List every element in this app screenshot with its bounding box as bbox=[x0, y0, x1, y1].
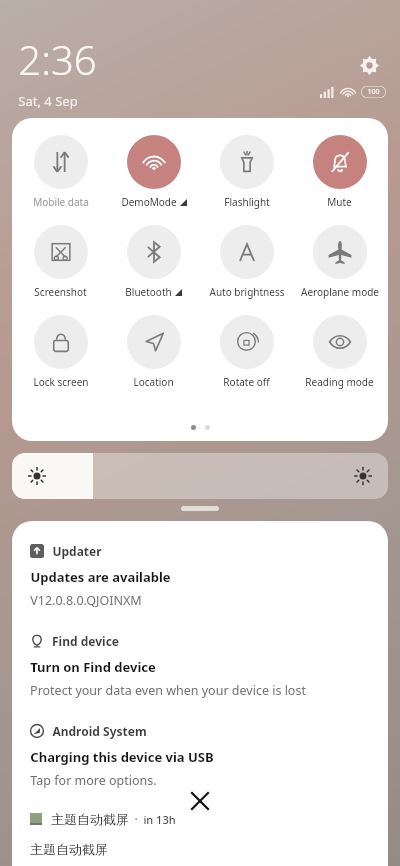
staticText: Android System bbox=[52, 723, 147, 739]
staticText: DemoMode bbox=[121, 195, 177, 209]
staticText: Protect your data even when your device … bbox=[30, 682, 306, 699]
button[interactable]: Rotate off bbox=[202, 315, 291, 389]
button[interactable]: 主题自动截屏 bbox=[30, 811, 176, 827]
staticText: Screenshot bbox=[34, 285, 87, 299]
staticText: Tap for more options. bbox=[30, 772, 157, 789]
button[interactable]: Settings bbox=[354, 50, 384, 80]
staticText: Lock screen bbox=[33, 375, 89, 389]
staticText: Flashlight bbox=[224, 195, 270, 209]
button[interactable] bbox=[12, 453, 388, 499]
staticText: Updates are available bbox=[30, 568, 171, 586]
button[interactable]: Mute bbox=[295, 135, 384, 209]
button[interactable]: Auto brightness bbox=[202, 225, 291, 299]
staticText: Find device bbox=[52, 633, 119, 649]
staticText: 2:36 bbox=[18, 32, 97, 86]
button[interactable]: DemoMode bbox=[109, 135, 198, 209]
button[interactable]: Flashlight bbox=[202, 135, 291, 209]
button[interactable]: Find device bbox=[30, 633, 370, 699]
staticText: · bbox=[134, 811, 138, 827]
staticText: 主题自动截屏 bbox=[30, 841, 108, 857]
button[interactable]: Close bbox=[178, 779, 222, 823]
staticText: Updater bbox=[52, 543, 102, 559]
staticText: Reading mode bbox=[305, 375, 374, 389]
button[interactable]: Reading mode bbox=[295, 315, 384, 389]
staticText: Auto brightness bbox=[209, 285, 285, 299]
staticText: 100 bbox=[367, 87, 380, 97]
button[interactable]: Aeroplane mode bbox=[295, 225, 384, 299]
button[interactable]: Updater bbox=[30, 543, 370, 609]
staticText: V12.0.8.0.QJOINXM bbox=[30, 592, 142, 609]
staticText: Sat, 4 Sep bbox=[18, 92, 78, 110]
button[interactable]: Lock screen bbox=[16, 315, 105, 389]
staticText: Aeroplane mode bbox=[301, 285, 379, 299]
button[interactable]: Location bbox=[109, 315, 198, 389]
staticText: Charging this device via USB bbox=[30, 748, 214, 766]
staticText: Location bbox=[133, 375, 174, 389]
staticText: 主题自动截屏 bbox=[51, 811, 129, 827]
button[interactable]: Bluetooth bbox=[109, 225, 198, 299]
staticText: Mute bbox=[327, 195, 352, 209]
staticText: Mobile data bbox=[33, 195, 89, 209]
button[interactable]: Screenshot bbox=[16, 225, 105, 299]
staticText: in 13h bbox=[143, 812, 176, 827]
button[interactable]: Mobile data bbox=[16, 135, 105, 209]
staticText: Turn on Find device bbox=[30, 658, 156, 676]
button[interactable]: Android System bbox=[30, 723, 370, 789]
staticText: Bluetooth bbox=[125, 285, 172, 299]
staticText: Rotate off bbox=[223, 375, 270, 389]
